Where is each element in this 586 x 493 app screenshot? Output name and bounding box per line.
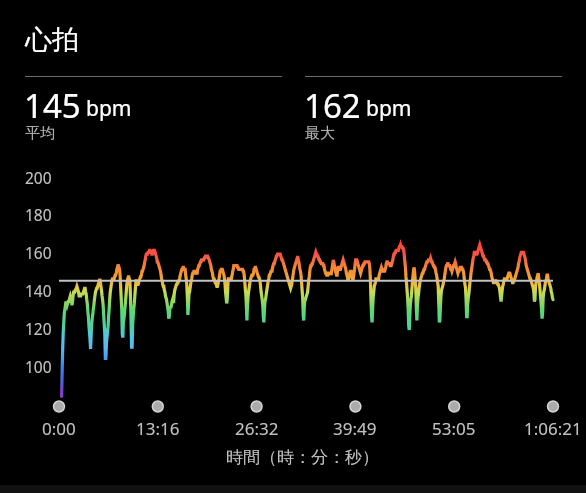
staticText: 最大	[305, 124, 335, 143]
staticText: 120	[25, 318, 52, 339]
staticText: 145	[24, 83, 81, 128]
button[interactable]: 162	[305, 76, 562, 142]
staticText: bpm	[86, 94, 132, 123]
staticText: 0:00	[42, 417, 76, 439]
staticText: 162	[304, 83, 361, 128]
staticText: 180	[25, 204, 52, 225]
staticText: 時間（時：分：秒）	[226, 447, 379, 468]
staticText: 26:32	[235, 417, 279, 439]
staticText: 160	[25, 242, 52, 263]
staticText: 13:16	[136, 417, 180, 439]
staticText: 1:06:21	[524, 417, 582, 439]
staticText: 平均	[25, 124, 55, 143]
staticText: 53:05	[432, 417, 476, 439]
staticText: 140	[25, 280, 52, 301]
staticText: 心拍	[25, 23, 79, 57]
staticText: 39:49	[333, 417, 377, 439]
staticText: 100	[25, 356, 52, 377]
button[interactable]: 145	[25, 76, 282, 142]
staticText: 200	[25, 167, 52, 188]
staticText: bpm	[366, 94, 412, 123]
